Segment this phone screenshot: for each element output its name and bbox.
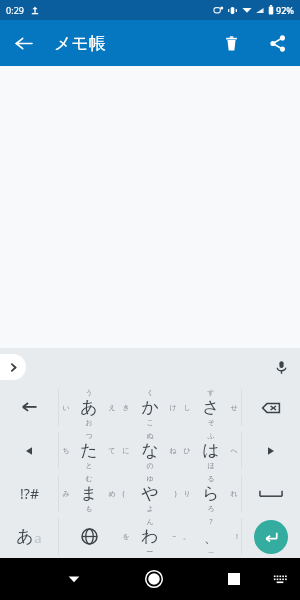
staticText: か (141, 397, 159, 418)
button[interactable]: う (59, 386, 119, 429)
staticText: い (62, 403, 70, 412)
staticText: は (202, 440, 220, 461)
staticText: 、 (204, 529, 217, 545)
staticText: や (141, 483, 159, 504)
staticText: − (172, 532, 177, 542)
button[interactable]: Cursor left (0, 429, 58, 472)
button[interactable]: Undo (0, 386, 58, 429)
staticText: な (141, 440, 159, 461)
staticText: む (85, 474, 93, 483)
staticText: メモ帳 (54, 33, 106, 54)
button[interactable]: つ (59, 429, 119, 472)
button[interactable]: Delete (208, 20, 254, 66)
staticText: け (169, 403, 177, 412)
staticText: さ (202, 397, 220, 418)
staticText: !?# (20, 484, 39, 503)
button[interactable]: !?# (0, 472, 58, 515)
staticText: あ (16, 526, 34, 547)
staticText: 92% (276, 4, 294, 16)
button[interactable]: Space (242, 472, 300, 515)
staticText: よ (146, 504, 154, 513)
staticText: こ (146, 418, 154, 427)
staticText: り (183, 489, 191, 498)
staticText: ほ (207, 461, 215, 470)
staticText: と (85, 461, 93, 470)
staticText: ゆ (146, 474, 154, 483)
staticText: あ (80, 397, 98, 418)
button[interactable]: Recents (208, 558, 260, 600)
staticText: て (108, 446, 116, 455)
button[interactable]: む (59, 472, 119, 515)
staticText: へ (230, 446, 238, 455)
button[interactable]: る (180, 472, 241, 515)
staticText: を (122, 532, 130, 541)
staticText: め (108, 489, 116, 498)
button[interactable]: ん (119, 515, 180, 558)
button[interactable]: Hide keyboard (48, 558, 100, 600)
staticText: の (146, 461, 154, 470)
staticText: ら (202, 483, 220, 504)
staticText: く (146, 388, 154, 397)
staticText: 0:29 (6, 4, 24, 16)
button[interactable]: ? (180, 515, 241, 558)
staticText: み (62, 489, 70, 498)
staticText: き (122, 403, 130, 412)
staticText: ろ (207, 504, 215, 513)
staticText: た (80, 440, 98, 461)
staticText: し (183, 403, 191, 412)
staticText: … (208, 546, 214, 556)
staticText: ち (62, 446, 70, 455)
button[interactable]: Change language (59, 515, 119, 558)
staticText: に (122, 446, 130, 455)
staticText: え (108, 403, 116, 412)
staticText: す (207, 388, 215, 397)
staticText: ま (80, 483, 98, 504)
staticText: そ (207, 418, 215, 427)
staticText: ? (209, 517, 213, 527)
staticText: ね (169, 446, 177, 455)
staticText: 。 (183, 532, 190, 541)
staticText: わ (141, 526, 159, 547)
button[interactable]: Voice input (262, 348, 300, 386)
staticText: つ (85, 431, 93, 440)
button[interactable]: く (119, 386, 180, 429)
button[interactable]: Backspace (242, 386, 300, 429)
button[interactable]: あ (0, 515, 58, 558)
staticText: ! (236, 532, 238, 542)
button[interactable]: Share (254, 20, 300, 66)
staticText: う (85, 388, 93, 397)
button[interactable]: ふ (180, 429, 241, 472)
staticText: れ (230, 489, 238, 498)
staticText: ん (146, 517, 154, 526)
button[interactable]: Back (0, 20, 46, 66)
staticText: ひ (183, 446, 191, 455)
staticText: a (34, 529, 42, 547)
button[interactable]: Switch keyboard (260, 559, 300, 599)
button[interactable]: ぬ (119, 429, 180, 472)
button[interactable]: Cursor right (242, 429, 300, 472)
button[interactable]: す (180, 386, 241, 429)
staticText: ー (146, 547, 153, 556)
staticText: ( (122, 489, 125, 499)
button[interactable]: Home (128, 558, 180, 600)
staticText: ) (174, 489, 177, 499)
staticText: る (207, 474, 215, 483)
staticText: ふ (207, 431, 215, 440)
staticText: も (85, 504, 93, 513)
staticText: せ (230, 403, 238, 412)
staticText: ぬ (146, 431, 154, 440)
button[interactable]: Enter (254, 520, 288, 554)
staticText: お (85, 418, 93, 427)
button[interactable]: ゆ (119, 472, 180, 515)
button[interactable]: Expand toolbar (0, 354, 26, 380)
